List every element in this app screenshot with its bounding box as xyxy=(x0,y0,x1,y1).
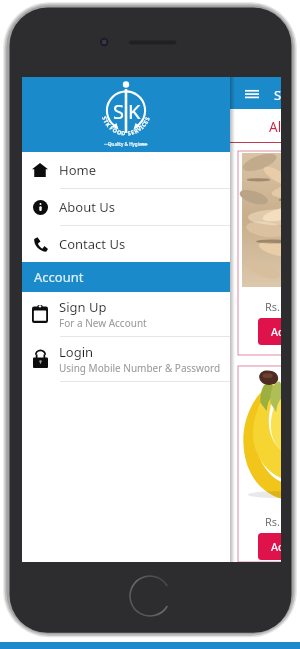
staticText: Rs. 60.00 xyxy=(265,514,281,529)
button[interactable]: Rs. 60.00 xyxy=(238,151,281,355)
button[interactable]: Login xyxy=(22,337,230,381)
button[interactable]: Home xyxy=(22,152,230,188)
staticText: All Products xyxy=(269,118,281,136)
staticText: Contact Us xyxy=(59,235,126,253)
button[interactable]: Open navigation menu xyxy=(245,90,259,99)
staticText: Account xyxy=(34,268,84,286)
staticText: Login xyxy=(59,343,94,361)
staticText: For a New Account xyxy=(59,316,147,330)
button[interactable]: Sign Up xyxy=(22,292,230,336)
staticText: S xyxy=(113,98,124,125)
staticText: Add To Cart xyxy=(271,539,281,554)
button[interactable]: Contact Us xyxy=(22,226,230,262)
staticText: Add To Cart xyxy=(271,324,281,339)
staticText: K xyxy=(128,98,141,125)
button[interactable]: Add To Cart xyxy=(258,533,281,560)
staticText: Rs. 60.00 xyxy=(265,299,281,314)
button[interactable]: About Us xyxy=(22,189,230,225)
staticText: Quality & Hygiene xyxy=(108,141,147,147)
staticText: Home xyxy=(59,161,96,179)
button[interactable]: Rs. 60.00 xyxy=(238,366,281,562)
button[interactable]: Account xyxy=(22,262,230,292)
staticText: About Us xyxy=(59,198,116,216)
button[interactable]: Add To Cart xyxy=(258,318,281,345)
staticText: Sign Up xyxy=(59,298,107,316)
staticText: Using Mobile Number & Password xyxy=(59,361,221,375)
staticText: STK FOOD SERVICES xyxy=(274,86,281,104)
